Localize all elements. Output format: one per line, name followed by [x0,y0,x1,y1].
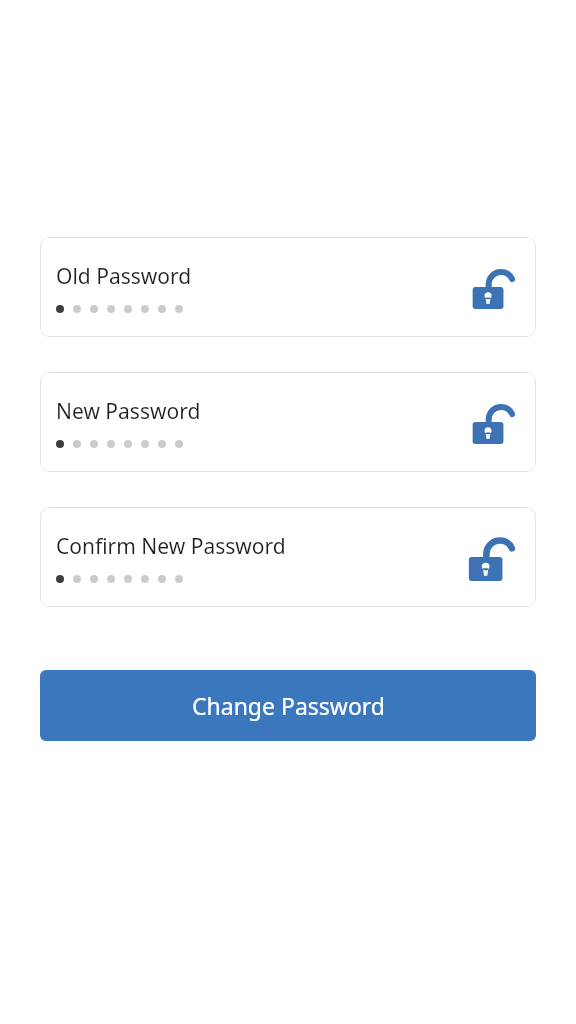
staticText: Old Password [56,262,192,291]
other: Toggle password visibility [470,400,514,444]
other: Toggle password visibility [466,533,514,581]
button[interactable]: New Password [40,372,536,472]
staticText: Change Password [192,690,385,721]
staticText: New Password [56,397,201,426]
button[interactable]: Confirm New Password [40,507,536,607]
button[interactable]: Change Password [40,670,536,741]
button[interactable]: Old Password [40,237,536,337]
other: Toggle password visibility [470,265,514,309]
staticText: Confirm New Password [56,532,286,561]
